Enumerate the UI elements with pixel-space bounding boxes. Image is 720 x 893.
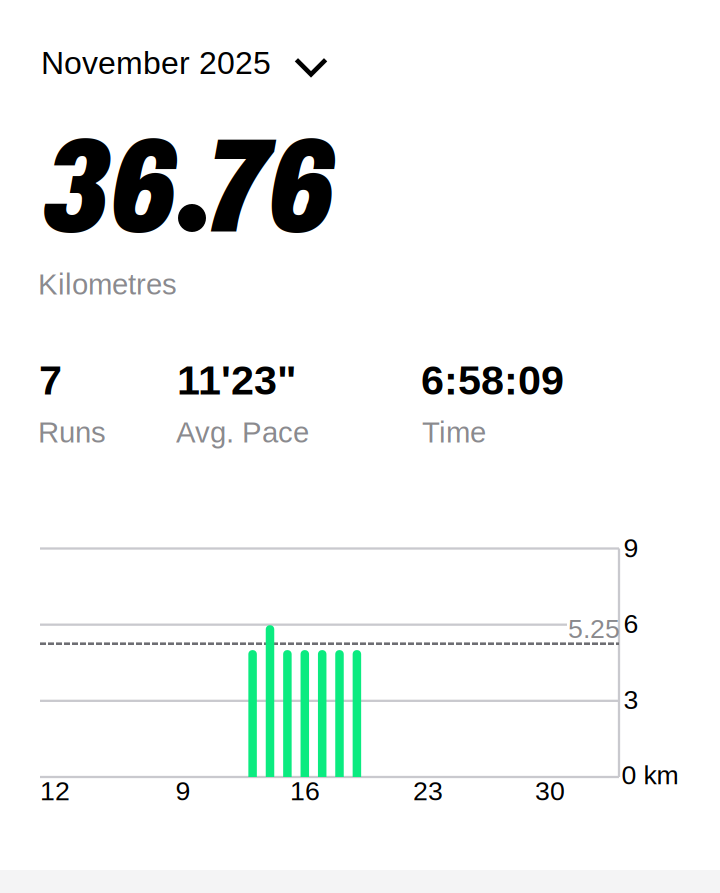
staticText: November 2025 [41, 45, 271, 81]
staticText: Time [422, 416, 486, 449]
staticText: 23 [413, 776, 443, 806]
staticText: 5.25 [568, 614, 620, 644]
staticText: 3 [623, 685, 638, 715]
staticText: 11'23" [177, 357, 297, 403]
staticText: 7 [39, 357, 62, 403]
staticText: 9 [175, 776, 190, 806]
staticText: 76 [206, 114, 335, 259]
staticText: Avg. Pace [176, 416, 309, 449]
staticText: 12 [40, 776, 70, 806]
staticText: Kilometres [38, 268, 177, 301]
button[interactable]: November 2025 [41, 39, 328, 87]
staticText: 36 [43, 114, 177, 259]
staticText: 16 [290, 776, 320, 806]
staticText: 9 [623, 533, 638, 563]
staticText: Runs [38, 416, 106, 449]
staticText: 6:58:09 [421, 357, 564, 403]
staticText: 6 [623, 609, 638, 639]
staticText: 0 km [621, 760, 678, 790]
staticText: 30 [535, 776, 565, 806]
